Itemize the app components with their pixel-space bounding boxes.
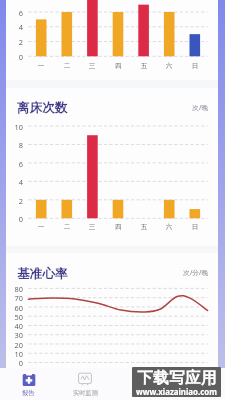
staticText: 40 <box>3 321 23 331</box>
staticText: 二 <box>57 223 77 231</box>
staticText: 六 <box>159 223 179 231</box>
staticText: 30 <box>3 330 23 340</box>
staticText: 我的 <box>191 389 204 397</box>
staticText: 10 <box>3 349 23 359</box>
staticText: 2 <box>3 196 23 206</box>
staticText: 次/分/晚 <box>147 268 208 277</box>
staticText: 0 <box>3 52 23 62</box>
staticText: 8 <box>3 140 23 150</box>
staticText: 四 <box>108 223 128 231</box>
other: 报告 <box>22 372 36 386</box>
staticText: 2 <box>3 37 23 47</box>
button[interactable]: 设备 <box>113 368 169 400</box>
staticText: 基准心率 <box>17 266 68 282</box>
staticText: 60 <box>3 303 23 313</box>
staticText: 一 <box>31 62 51 70</box>
other: 设备 <box>134 372 148 386</box>
staticText: 4 <box>3 22 23 32</box>
staticText: 20 <box>3 340 23 350</box>
staticText: 五 <box>134 223 154 231</box>
staticText: 二 <box>57 62 77 70</box>
other: 我的 <box>190 372 204 386</box>
staticText: 80 <box>3 284 23 294</box>
staticText: 五 <box>134 62 154 70</box>
staticText: www.xiazainiao.com <box>132 387 221 397</box>
staticText: 70 <box>3 293 23 303</box>
staticText: 一 <box>31 223 51 231</box>
staticText: 离床次数 <box>17 100 68 116</box>
staticText: 四 <box>108 62 128 70</box>
button[interactable]: 实时监测 <box>57 368 113 400</box>
staticText: 下载写应用 <box>133 368 221 388</box>
staticText: 六 <box>159 62 179 70</box>
staticText: 0 <box>3 214 23 224</box>
staticText: 实时监测 <box>73 389 98 397</box>
staticText: 次/晚 <box>147 103 208 112</box>
button[interactable]: 我的 <box>169 368 225 400</box>
staticText: 6 <box>3 8 23 18</box>
staticText: 三 <box>82 62 102 70</box>
button[interactable]: 报告 <box>0 368 57 400</box>
other: 实时监测 <box>78 372 92 386</box>
staticText: 4 <box>3 177 23 187</box>
staticText: 6 <box>3 159 23 169</box>
staticText: 日 <box>185 62 205 70</box>
staticText: 10 <box>3 122 23 132</box>
staticText: 0 <box>3 358 23 368</box>
staticText: 日 <box>185 223 205 231</box>
staticText: 三 <box>82 223 102 231</box>
staticText: 报告 <box>22 389 35 397</box>
staticText: 设备 <box>135 389 148 397</box>
staticText: 50 <box>3 312 23 322</box>
